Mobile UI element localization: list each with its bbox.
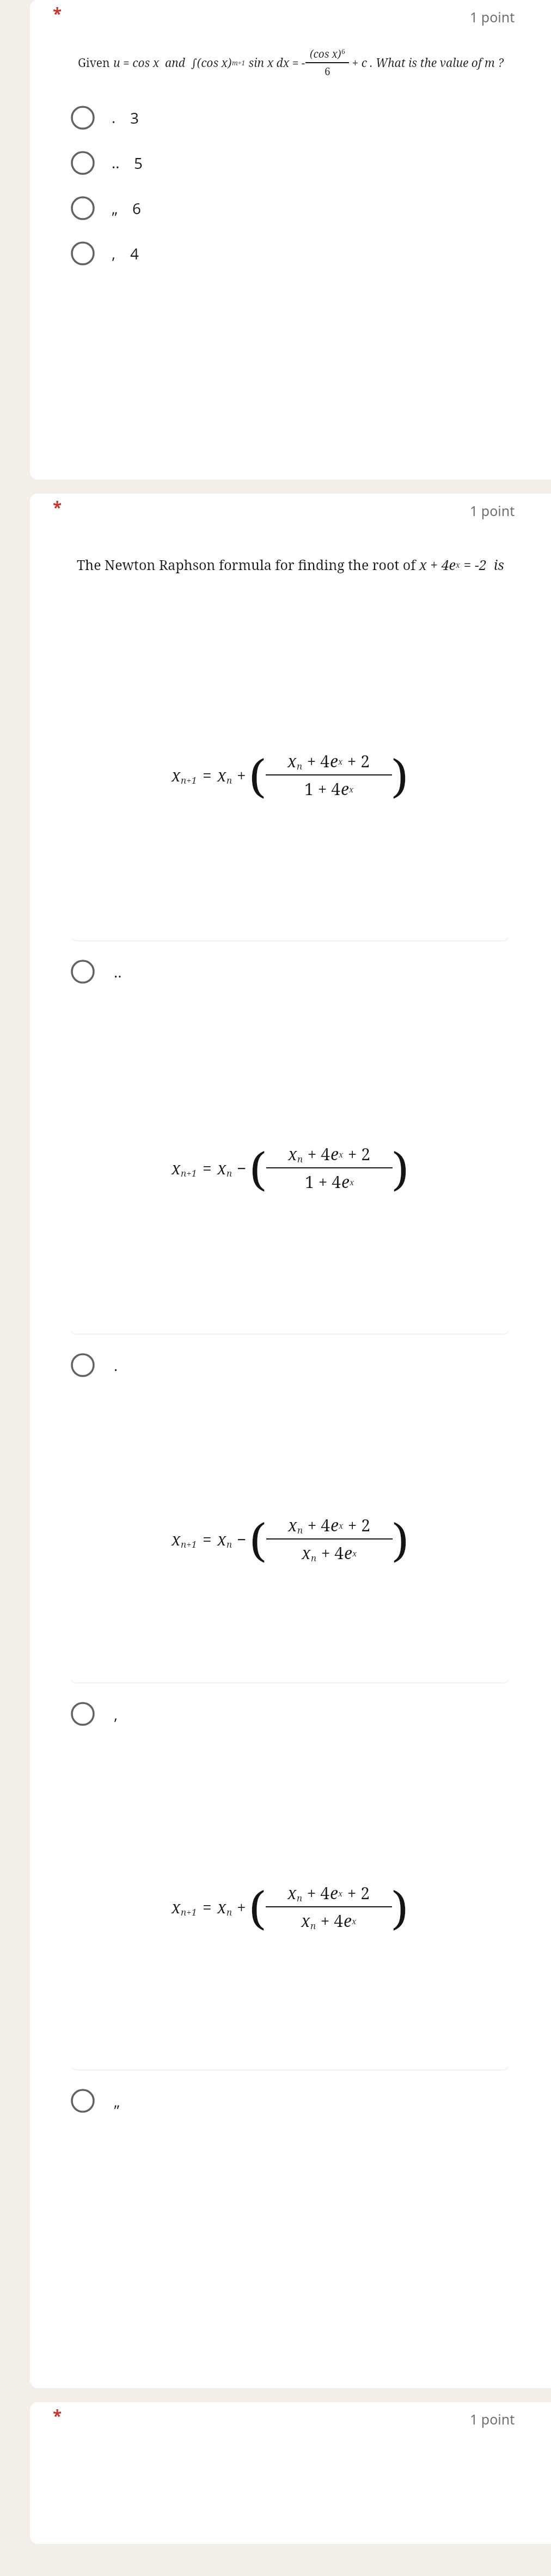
staticText: . <box>114 1355 118 1375</box>
staticText: The Newton Raphson formula for finding t… <box>77 555 419 574</box>
staticText: .. <box>114 962 122 982</box>
staticText: x <box>338 1888 343 1899</box>
staticText: x <box>350 1177 354 1187</box>
staticText: + 4 <box>303 1143 330 1165</box>
staticText: n <box>226 1538 232 1550</box>
staticText: n <box>226 1906 232 1918</box>
staticText: n <box>226 774 232 786</box>
staticText: , <box>112 243 116 263</box>
staticText: ( <box>250 1137 266 1199</box>
staticText: sin x dx = − <box>246 55 305 71</box>
staticText: 6 <box>132 198 142 219</box>
staticText: + c . What is the value of m ? <box>349 55 504 71</box>
staticText: e <box>341 778 349 800</box>
staticText: n+1 <box>181 1538 197 1550</box>
staticText: − <box>237 1528 247 1550</box>
staticText: e <box>344 1910 352 1932</box>
staticText: x <box>338 756 343 767</box>
staticText: * <box>53 2404 62 2427</box>
staticText: n <box>311 1551 317 1564</box>
staticText: n <box>310 1919 316 1932</box>
button[interactable]: , <box>30 231 551 276</box>
staticText: + 4 <box>303 1514 330 1536</box>
staticText: e <box>330 1143 339 1165</box>
staticText: 3 <box>130 107 139 128</box>
button[interactable]: . <box>30 95 551 140</box>
staticText: ( <box>249 744 266 806</box>
staticText: + 4 <box>303 750 330 772</box>
button[interactable]: .. <box>30 140 551 185</box>
staticText: x <box>339 1149 344 1160</box>
staticText: + 4 <box>303 1882 330 1904</box>
staticText: x <box>301 1910 310 1932</box>
staticText: + 4 <box>314 778 341 800</box>
button[interactable]: , <box>30 1684 551 1744</box>
staticText: n <box>226 1167 232 1179</box>
staticText: 4 <box>130 243 139 264</box>
staticText: ) <box>393 1137 409 1199</box>
staticText: 6 <box>325 64 330 78</box>
staticText: ) <box>393 1508 409 1570</box>
staticText: Given <box>78 55 113 71</box>
staticText: = <box>203 1157 212 1179</box>
staticText: 5 <box>134 153 143 173</box>
staticText: = −2 is <box>460 555 504 574</box>
staticText: 1 <box>305 1171 314 1193</box>
button[interactable]: „ <box>30 2071 551 2131</box>
staticText: e <box>330 1514 339 1536</box>
staticText: x <box>339 1520 344 1531</box>
staticText: 1 <box>304 778 314 800</box>
staticText: x <box>302 1542 311 1564</box>
staticText: x <box>172 1157 181 1179</box>
staticText: = <box>203 1528 212 1550</box>
staticText: m+1 <box>232 58 246 67</box>
staticText: x <box>217 1157 226 1179</box>
staticText: + 2 <box>343 1882 370 1904</box>
staticText: x <box>217 764 226 786</box>
staticText: e <box>344 1542 352 1564</box>
staticText: − <box>237 1157 247 1179</box>
staticText: ) <box>392 1876 408 1938</box>
staticText: n <box>297 1892 303 1904</box>
staticText: x <box>456 560 460 570</box>
staticText: 1 point <box>470 8 515 26</box>
staticText: ( <box>249 1876 266 1938</box>
staticText: + <box>237 764 246 786</box>
staticText: ) <box>392 744 408 806</box>
staticText: .. <box>112 153 120 173</box>
staticText: 1 point <box>470 2410 515 2428</box>
staticText: x <box>287 750 297 772</box>
staticText: = <box>203 764 212 786</box>
staticText: 6 <box>341 47 345 56</box>
staticText: x <box>288 1143 297 1165</box>
staticText: + 4 <box>316 1910 344 1932</box>
button[interactable]: . <box>30 1335 551 1395</box>
staticText: + 2 <box>344 1514 371 1536</box>
staticText: 1 point <box>470 501 515 520</box>
staticText: x <box>288 1514 297 1536</box>
staticText: * <box>53 2 62 25</box>
staticText: e <box>330 1882 338 1904</box>
staticText: x <box>352 1916 357 1926</box>
staticText: x <box>217 1528 226 1550</box>
staticText: n+1 <box>181 774 197 786</box>
staticText: x <box>349 784 354 795</box>
staticText: + 2 <box>344 1143 371 1165</box>
staticText: x <box>172 1528 181 1550</box>
staticText: , <box>114 1704 118 1724</box>
staticText: + 4 <box>317 1542 344 1564</box>
staticText: x <box>287 1882 297 1904</box>
button[interactable]: .. <box>30 942 551 1002</box>
staticText: n <box>297 1153 303 1165</box>
staticText: x <box>172 1896 181 1918</box>
staticText: ( <box>250 1508 266 1570</box>
button[interactable]: „ <box>30 185 551 231</box>
staticText: = <box>203 1896 212 1918</box>
staticText: n <box>297 1524 303 1536</box>
staticText: u = cos x and ∫(cos x) <box>113 55 232 71</box>
staticText: * <box>53 496 62 518</box>
staticText: n+1 <box>181 1167 197 1179</box>
staticText: n+1 <box>181 1906 197 1918</box>
staticText: . <box>112 107 116 128</box>
staticText: x <box>352 1548 357 1559</box>
